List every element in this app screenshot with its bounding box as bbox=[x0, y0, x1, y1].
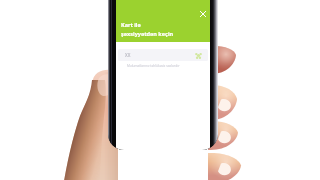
button[interactable]: Close bbox=[200, 11, 206, 17]
staticText: şəxsiyyətdən keçin bbox=[121, 30, 174, 37]
staticText: Məlumatlarınız təhlükəsiz saxlanılır bbox=[127, 64, 180, 68]
staticText: XX bbox=[125, 52, 131, 58]
button[interactable]: XX bbox=[118, 49, 208, 61]
staticText: Kart ilə bbox=[121, 21, 141, 28]
